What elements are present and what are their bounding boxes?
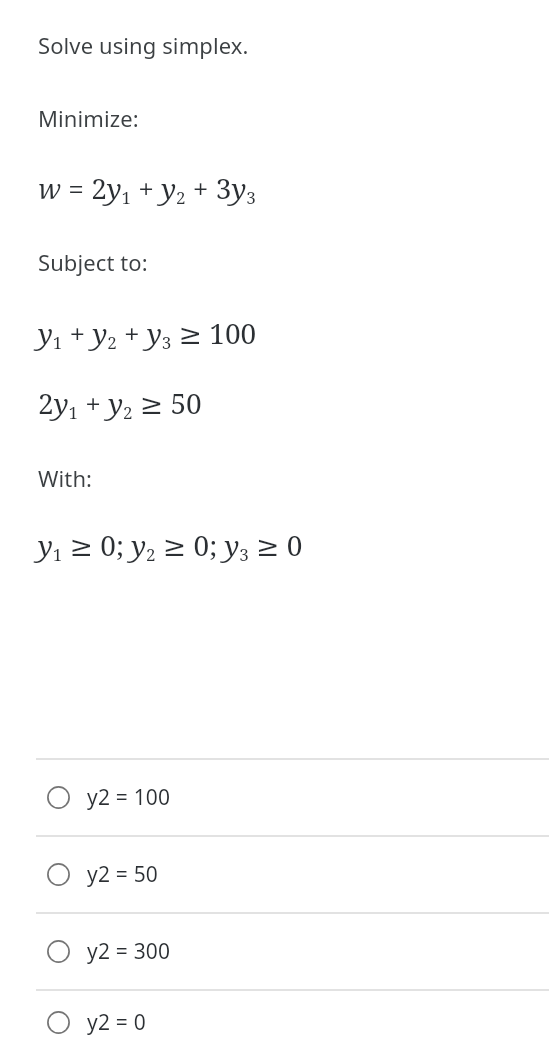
staticText: y2 = 50 bbox=[87, 860, 159, 889]
button[interactable]: y2 = 300 bbox=[0, 914, 549, 989]
staticText: y2 = 0 bbox=[87, 1008, 146, 1037]
staticText: 2y1 + y2 ≥ 50 bbox=[38, 384, 202, 424]
button[interactable]: y2 = 0 bbox=[0, 991, 549, 1053]
staticText: y1 + y2 + y3 ≥ 100 bbox=[38, 314, 257, 354]
staticText: Minimize: bbox=[38, 103, 139, 133]
button[interactable]: y2 = 50 bbox=[0, 837, 549, 912]
staticText: w = 2y1 + y2 + 3y3 bbox=[38, 169, 256, 209]
staticText: Solve using simplex. bbox=[38, 30, 249, 60]
staticText: y1 ≥ 0; y2 ≥ 0; y3 ≥ 0 bbox=[38, 526, 303, 566]
staticText: y2 = 100 bbox=[87, 783, 171, 812]
staticText: Subject to: bbox=[38, 247, 148, 277]
staticText: y2 = 300 bbox=[87, 937, 171, 966]
button[interactable]: y2 = 100 bbox=[0, 760, 549, 835]
staticText: With: bbox=[38, 463, 93, 493]
